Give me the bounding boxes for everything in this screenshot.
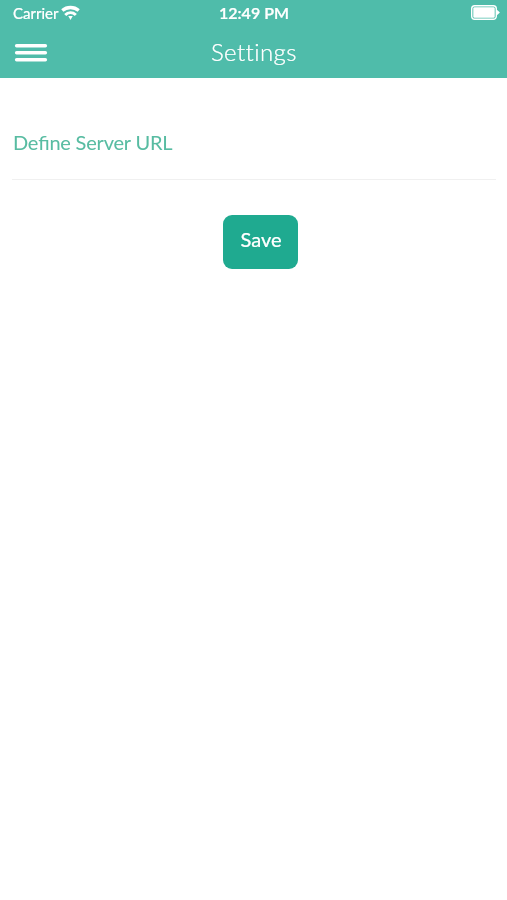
- other: Battery full: [471, 5, 500, 20]
- staticText: 12:49 PM: [219, 3, 289, 22]
- button[interactable]: Save: [223, 215, 298, 269]
- staticText: Define Server URL: [13, 130, 173, 154]
- staticText: Carrier: [13, 4, 59, 22]
- other: Wi-Fi signal full: [61, 5, 80, 20]
- button[interactable]: Open navigation menu: [0, 28, 62, 78]
- button[interactable]: Define Server URL: [0, 118, 507, 180]
- staticText: Save: [240, 227, 282, 251]
- staticText: Settings: [211, 37, 297, 66]
